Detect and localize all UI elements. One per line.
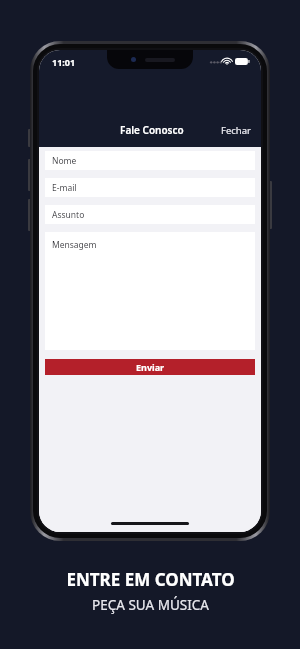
staticText: Mensagem (52, 239, 97, 251)
button[interactable]: Nome (45, 151, 255, 170)
button[interactable]: Fechar (211, 118, 261, 143)
staticText: Enviar (136, 361, 165, 373)
staticText: 11:01 (52, 56, 76, 68)
staticText: Assunto (52, 209, 85, 221)
staticText: ENTRE EM CONTATO (66, 568, 235, 591)
button[interactable]: Assunto (45, 205, 255, 224)
staticText: Fale Conosco (120, 123, 184, 137)
button[interactable]: Mensagem (45, 232, 255, 350)
staticText: Nome (52, 155, 77, 167)
button[interactable]: E-mail (45, 178, 255, 197)
staticText: PEÇA SUA MÚSICA (92, 596, 209, 614)
staticText: E-mail (52, 182, 77, 194)
staticText: Fechar (221, 124, 251, 137)
button[interactable]: Enviar (45, 359, 255, 375)
